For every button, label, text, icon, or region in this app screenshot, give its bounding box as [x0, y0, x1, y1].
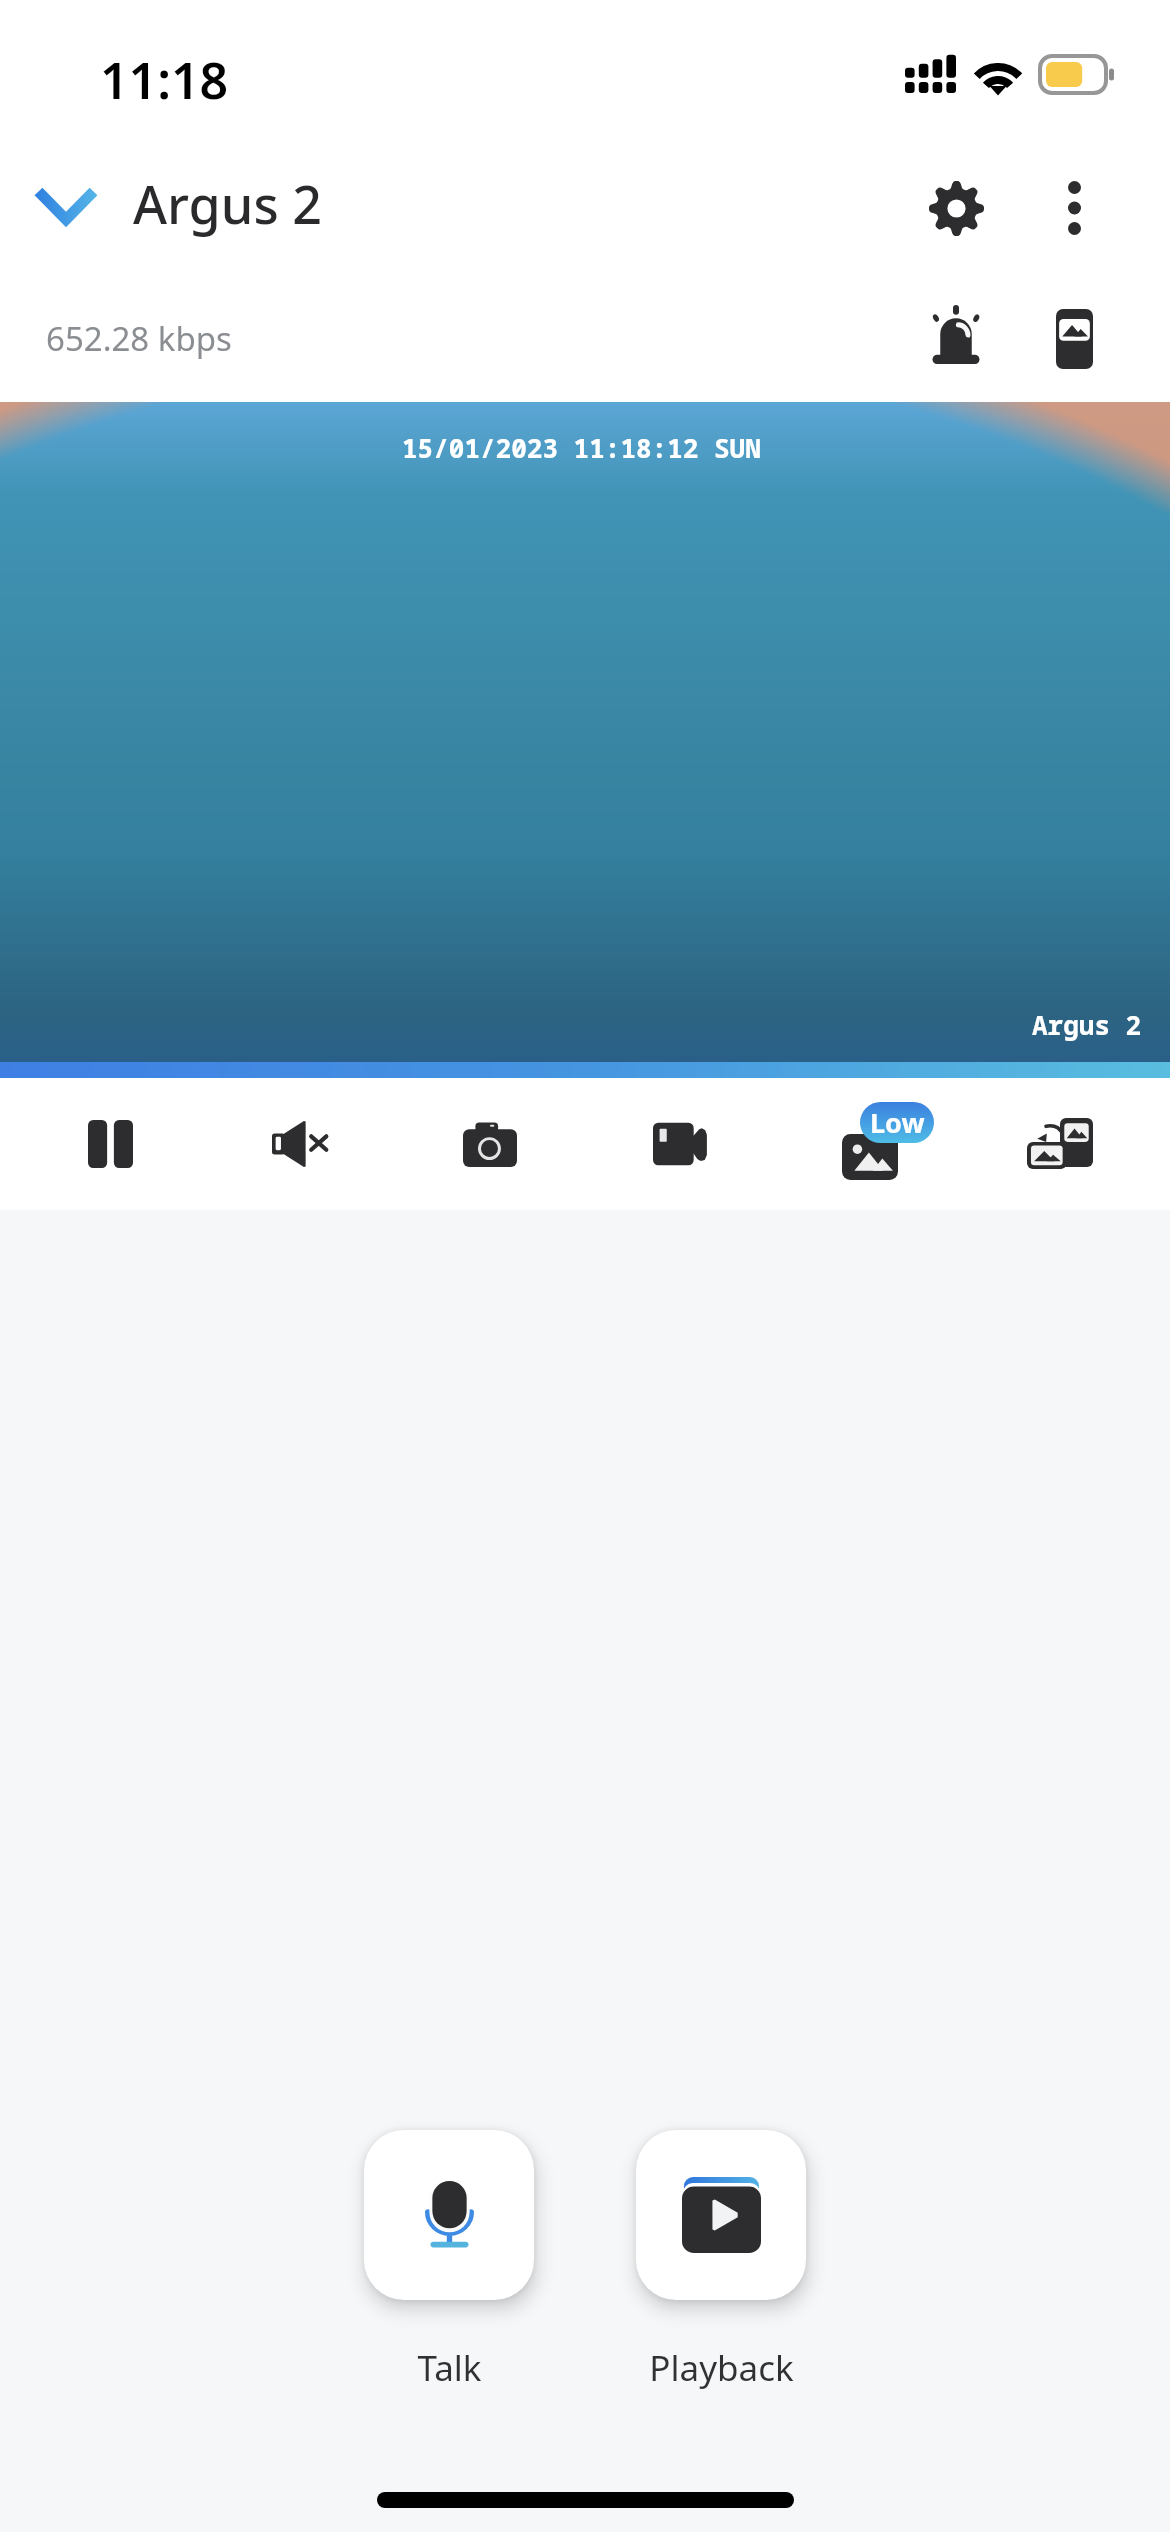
- staticText: Argus 2: [133, 168, 322, 239]
- button[interactable]: Alarm siren: [908, 286, 1004, 382]
- staticText: 11:18: [100, 46, 229, 114]
- button[interactable]: Snapshot: [395, 1078, 585, 1210]
- staticText: Talk: [417, 2344, 482, 2392]
- staticText: 652.28 kbps: [46, 316, 232, 361]
- button[interactable]: Mute: [205, 1078, 395, 1210]
- button[interactable]: Settings: [908, 157, 1004, 253]
- button[interactable]: Portrait mode: [1026, 286, 1122, 382]
- staticText: Argus 2: [1032, 1007, 1142, 1042]
- staticText: Playback: [649, 2344, 794, 2392]
- button[interactable]: Argus 2: [18, 158, 337, 253]
- button[interactable]: Quality Low: [775, 1078, 965, 1210]
- button[interactable]: Record: [585, 1078, 775, 1210]
- button[interactable]: [636, 2130, 806, 2300]
- button[interactable]: Rotate: [965, 1078, 1155, 1210]
- button[interactable]: More options: [1026, 157, 1122, 253]
- button[interactable]: Pause: [15, 1078, 205, 1210]
- button[interactable]: [364, 2130, 534, 2300]
- staticText: 15/01/2023 11:18:12 SUN: [402, 430, 761, 465]
- staticText: Low: [870, 1104, 925, 1141]
